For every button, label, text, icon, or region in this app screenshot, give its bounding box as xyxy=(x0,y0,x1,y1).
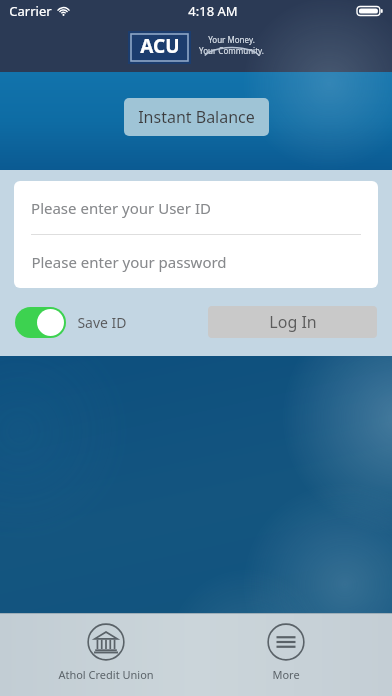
staticText: More xyxy=(272,667,300,682)
button[interactable]: More xyxy=(211,623,361,682)
button[interactable]: Please enter your password xyxy=(14,235,378,288)
staticText: Instant Balance xyxy=(138,106,255,128)
button[interactable]: Please enter your User ID xyxy=(14,181,378,234)
staticText: Please enter your User ID xyxy=(31,198,211,218)
staticText: Your Money. xyxy=(208,34,255,45)
staticText: Athol Credit Union xyxy=(58,667,154,682)
button[interactable]: Save ID xyxy=(15,307,127,338)
staticText: ACU xyxy=(140,33,180,59)
button[interactable]: Instant Balance xyxy=(124,98,269,136)
staticText: Please enter your password xyxy=(31,252,227,272)
staticText: Save ID xyxy=(77,313,127,332)
staticText: Log In xyxy=(269,311,317,333)
staticText: 4:18 AM xyxy=(188,2,238,20)
button[interactable]: Log In xyxy=(208,306,377,338)
staticText: Your Community. xyxy=(199,45,264,56)
staticText: Carrier xyxy=(9,2,52,20)
button[interactable]: Athol Credit Union xyxy=(31,623,181,682)
